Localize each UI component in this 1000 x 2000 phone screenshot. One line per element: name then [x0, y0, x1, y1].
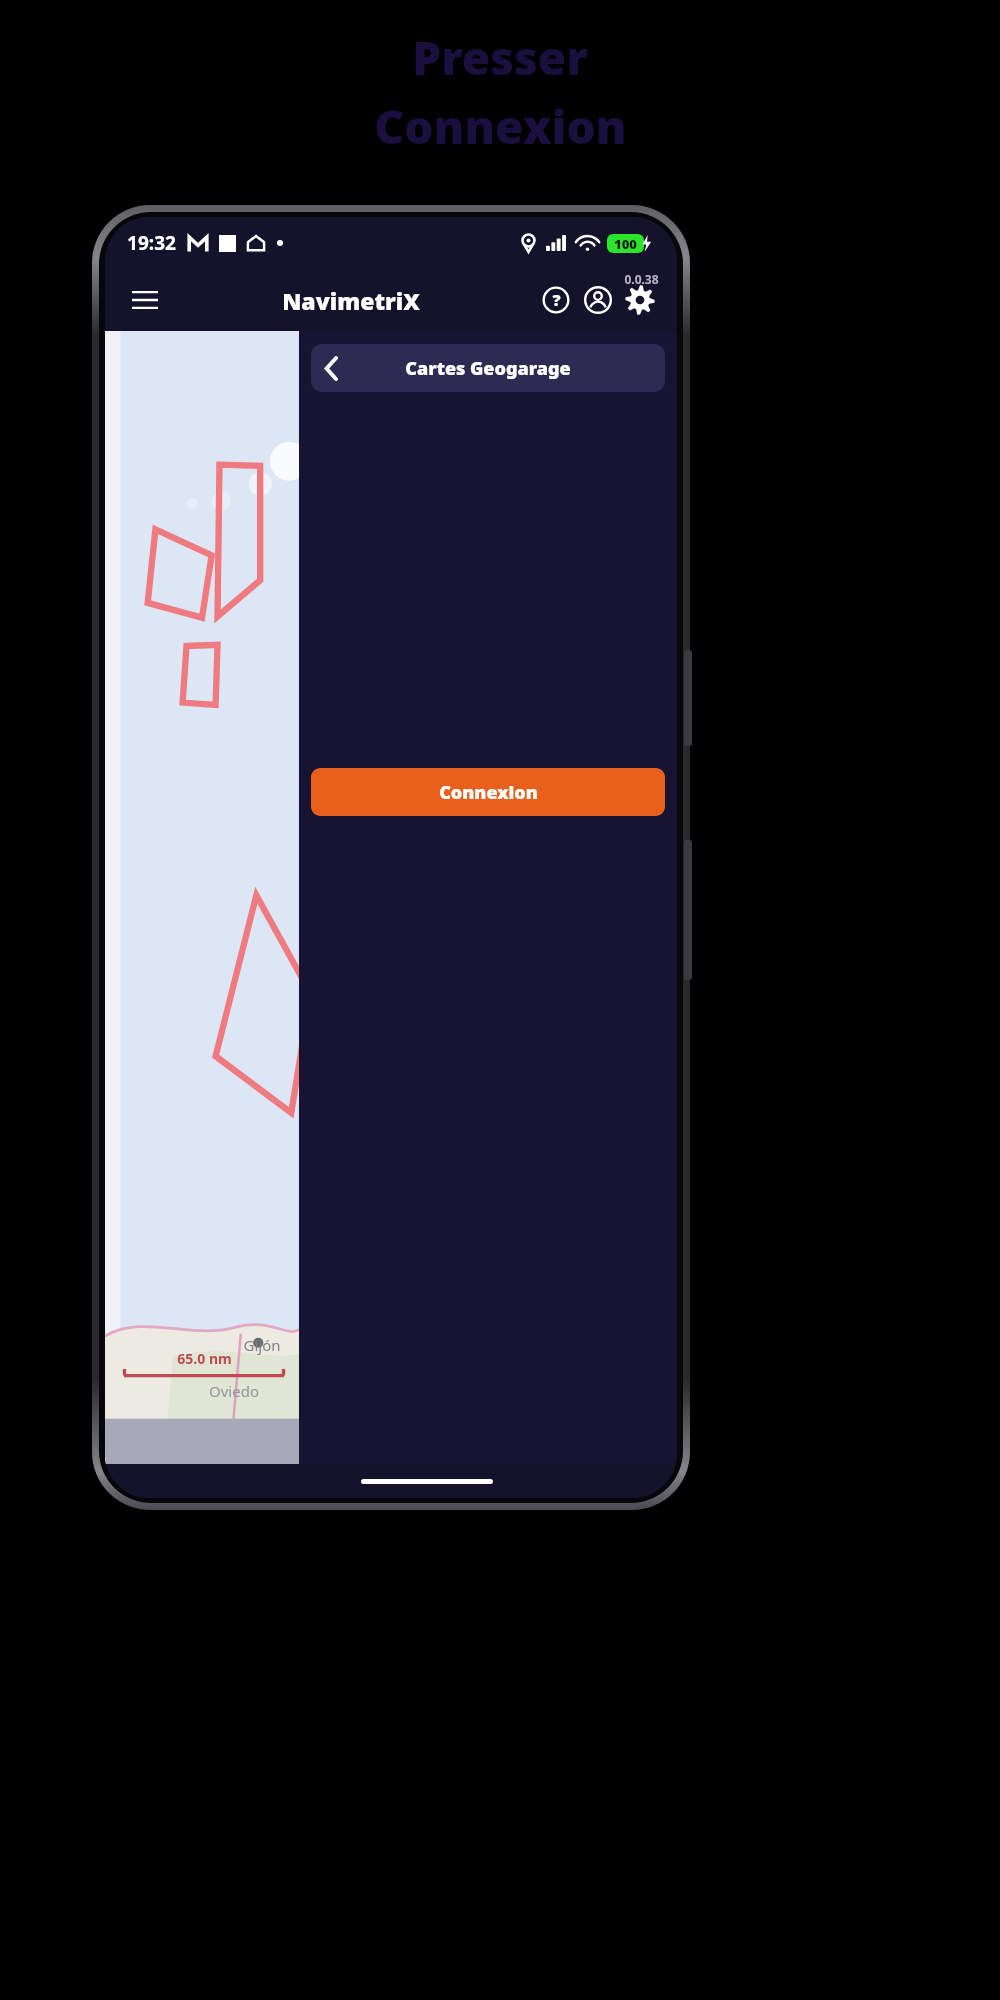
staticText: ?	[552, 289, 561, 311]
other: Back	[311, 344, 351, 392]
button[interactable]: Back	[311, 344, 665, 392]
staticText: Cartes Geogarage	[405, 356, 571, 381]
staticText: NavimetriX	[282, 285, 420, 316]
staticText: 65.0 nm	[177, 1349, 232, 1368]
staticText: Oviedo	[209, 1381, 259, 1401]
button[interactable]: Settings	[619, 279, 661, 321]
staticText: Connexion	[439, 780, 538, 805]
button[interactable]: Menu	[123, 278, 167, 322]
staticText: Gijón	[243, 1335, 281, 1355]
staticText: 19:32	[127, 230, 176, 256]
staticText: Presser	[412, 26, 588, 89]
staticText: 100	[614, 235, 637, 253]
staticText: 0.0.38	[624, 271, 659, 287]
button[interactable]: Account	[577, 279, 619, 321]
staticText: Connexion	[374, 95, 627, 158]
button[interactable]: Help	[535, 279, 577, 321]
button[interactable]: Connexion	[311, 768, 665, 816]
